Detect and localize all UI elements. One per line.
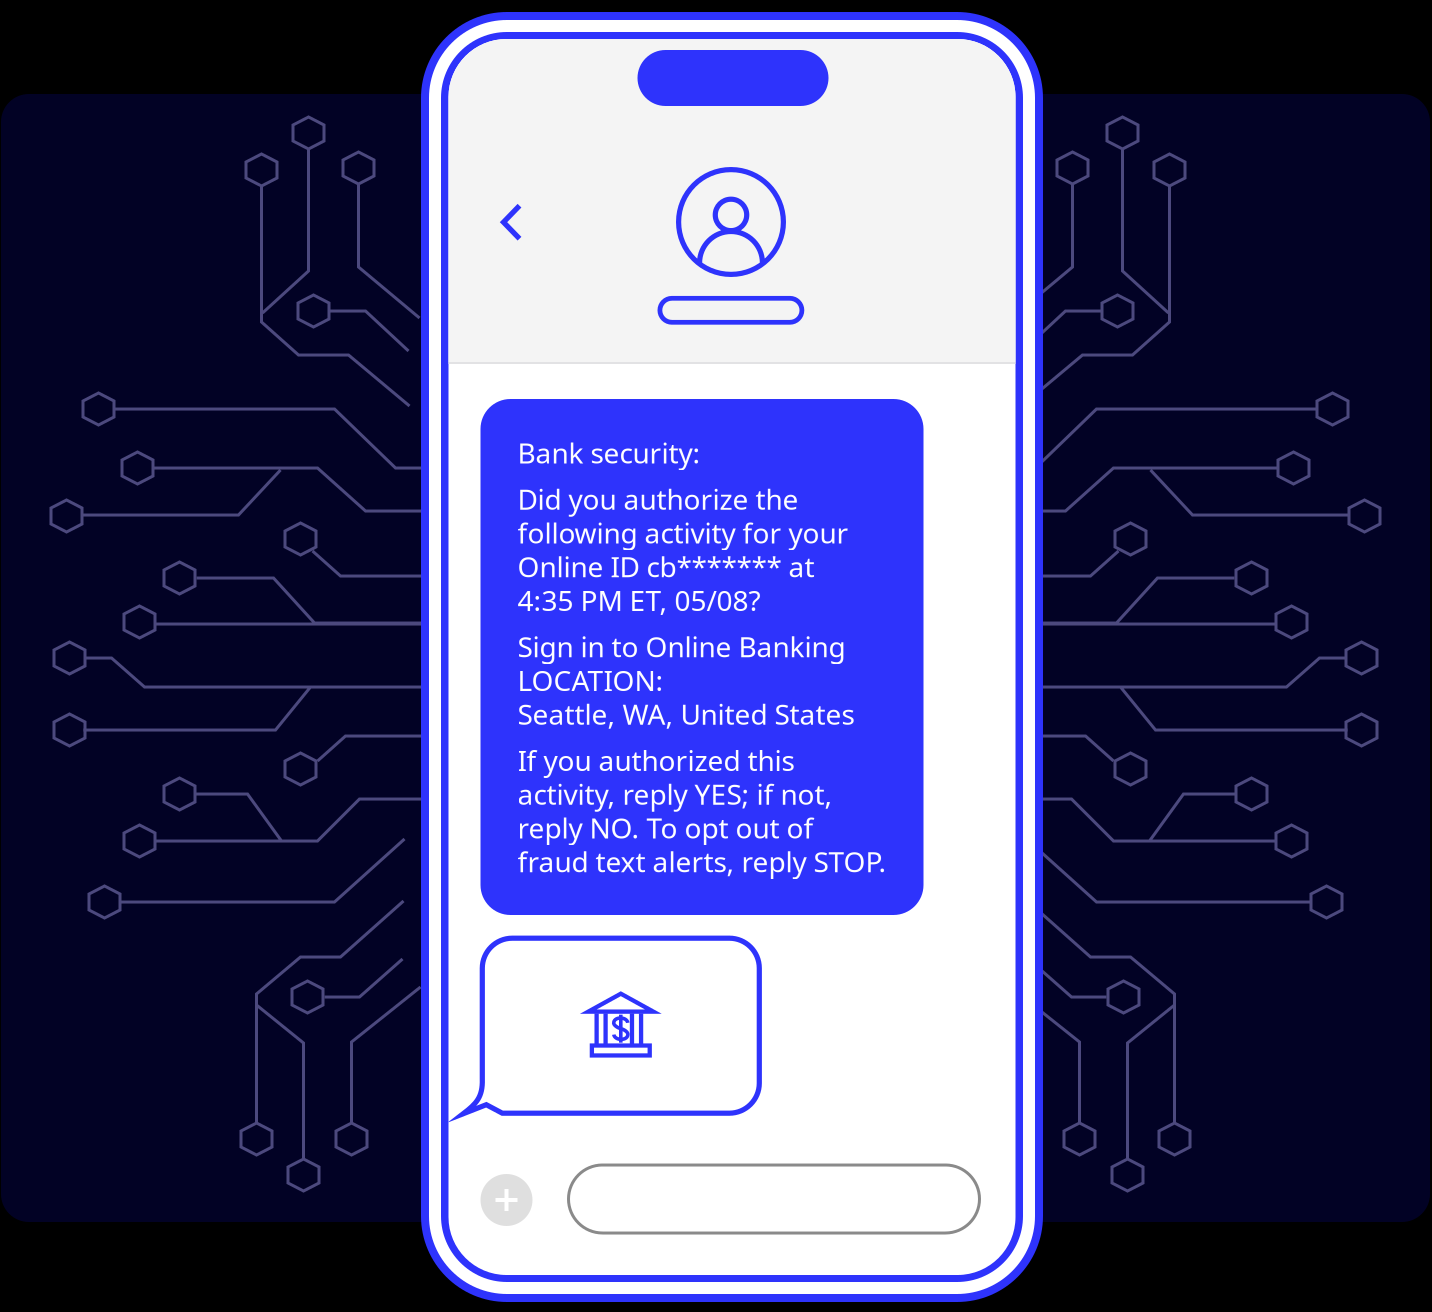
- staticText: Sign in to Online Banking LOCATION: Seat…: [517, 628, 854, 732]
- button[interactable]: Add attachment: [480, 1174, 532, 1226]
- staticText: Bank security:: [517, 434, 700, 471]
- staticText: If you authorized this activity, reply Y…: [517, 741, 886, 880]
- button[interactable]: Message field: [568, 1165, 979, 1233]
- button[interactable]: Back: [483, 186, 539, 259]
- staticText: Did you authorize the following activity…: [517, 480, 848, 619]
